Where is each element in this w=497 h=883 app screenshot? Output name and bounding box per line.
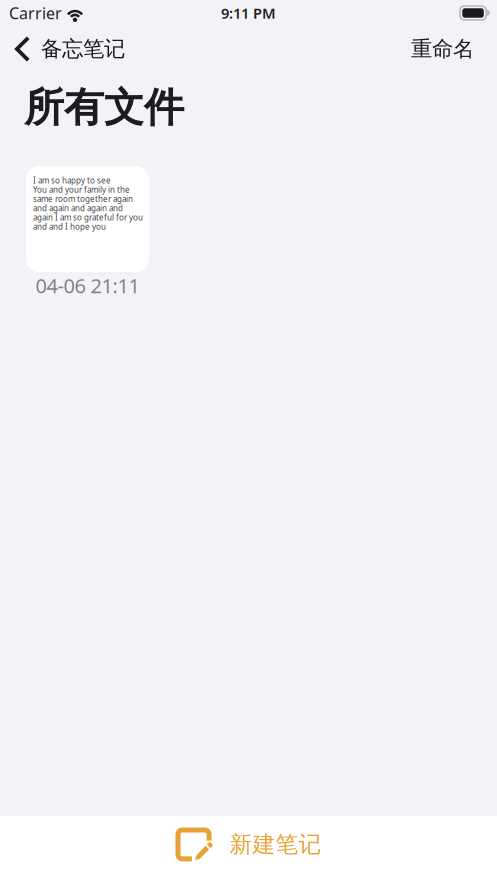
staticText: 9:11 PM (221, 3, 276, 23)
staticText: 所有文件 (24, 83, 184, 132)
button[interactable]: I am so happy to see You and your family… (26, 166, 149, 272)
button[interactable]: 新建笔记 (161, 823, 335, 875)
button[interactable]: 重命名 (388, 26, 497, 72)
staticText: 重命名 (411, 36, 474, 62)
staticText: Carrier (9, 2, 62, 24)
button[interactable]: 备忘笔记 (0, 26, 135, 72)
staticText: 新建笔记 (229, 831, 321, 858)
staticText: I am so happy to see You and your family… (33, 175, 143, 232)
staticText: 备忘笔记 (41, 36, 125, 62)
staticText: 04-06 21:11 (35, 272, 139, 299)
